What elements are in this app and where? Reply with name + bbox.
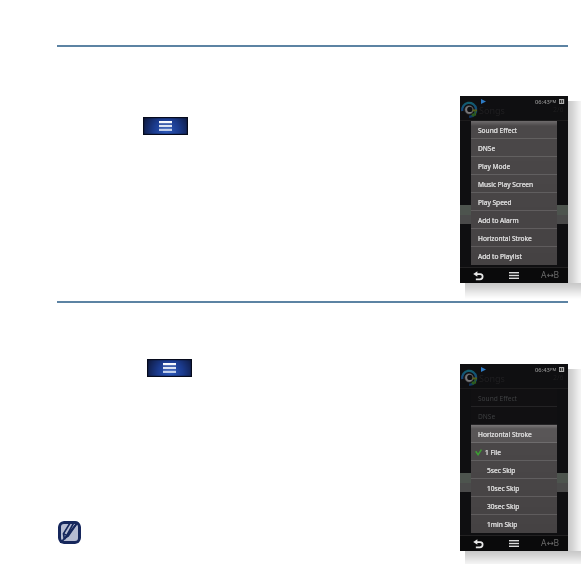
staticText: 06:43 xyxy=(535,366,550,374)
button[interactable]: Add to Alarm xyxy=(471,211,557,229)
staticText: Music Play Screen xyxy=(478,180,534,189)
button[interactable]: 10sec Skip xyxy=(471,479,557,497)
staticText: Horizontal Stroke xyxy=(478,430,532,439)
staticText: Sound Effect xyxy=(478,394,517,403)
staticText: Play Speed xyxy=(478,198,512,207)
staticText: 5sec Skip xyxy=(487,466,516,475)
button[interactable]: DNSe xyxy=(471,139,557,157)
staticText: PM xyxy=(550,367,557,373)
button[interactable]: 30sec Skip xyxy=(471,497,557,515)
button[interactable]: Horizontal Stroke xyxy=(471,425,557,443)
staticText: A↔B xyxy=(541,269,560,281)
staticText: 1 File xyxy=(485,448,502,457)
button[interactable]: Add to Playlist xyxy=(471,247,557,265)
button[interactable]: Menu xyxy=(143,117,188,135)
staticText: Songs xyxy=(479,372,505,384)
staticText: PM xyxy=(550,99,557,105)
button[interactable]: Back xyxy=(460,535,496,551)
staticText: Sound Effect xyxy=(478,126,517,135)
staticText: Songs xyxy=(479,104,505,116)
staticText: Add to Playlist xyxy=(478,252,522,261)
button[interactable]: Play Mode xyxy=(471,157,557,175)
button[interactable]: Sound Effect xyxy=(471,389,557,407)
staticText: Horizontal Stroke xyxy=(478,234,532,243)
button[interactable]: DNSe xyxy=(471,407,557,425)
staticText: 06:43 xyxy=(535,98,550,106)
button[interactable]: Options xyxy=(496,535,532,551)
button[interactable]: 5sec Skip xyxy=(471,461,557,479)
staticText: 2/6 xyxy=(553,373,564,383)
staticText: 10sec Skip xyxy=(487,484,520,493)
button[interactable]: Options xyxy=(496,267,532,283)
button[interactable]: Play Speed xyxy=(471,193,557,211)
staticText: DNSe xyxy=(478,144,496,153)
button[interactable]: 1 File xyxy=(471,443,557,461)
button[interactable]: 1min Skip xyxy=(471,515,557,533)
staticText: 1min Skip xyxy=(487,520,518,529)
staticText: Add to Alarm xyxy=(478,216,519,225)
button[interactable]: Back xyxy=(460,267,496,283)
button[interactable]: Sound Effect xyxy=(471,121,557,139)
staticText: A↔B xyxy=(541,537,560,549)
button[interactable]: Horizontal Stroke xyxy=(471,229,557,247)
staticText: Play Mode xyxy=(478,162,511,171)
button[interactable]: A-B repeat xyxy=(532,267,568,283)
button[interactable]: Music Play Screen xyxy=(471,175,557,193)
staticText: 30sec Skip xyxy=(487,502,520,511)
button[interactable]: Menu xyxy=(147,359,192,377)
staticText: DNSe xyxy=(478,412,496,421)
button[interactable]: A-B repeat xyxy=(532,535,568,551)
staticText: 2/6 xyxy=(553,105,564,115)
